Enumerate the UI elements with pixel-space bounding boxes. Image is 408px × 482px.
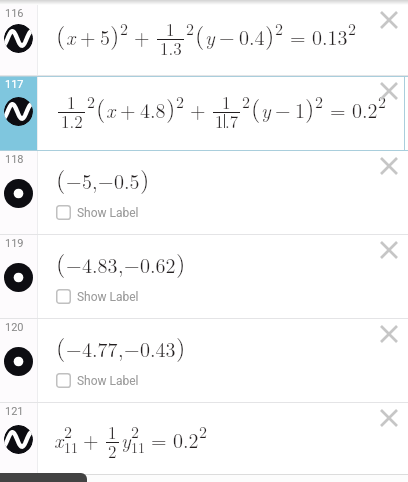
staticText: 1 <box>166 17 175 41</box>
staticText: 2 <box>186 17 195 40</box>
staticText: 2 <box>199 420 208 443</box>
staticText: 0.43 <box>140 334 176 362</box>
staticText: 0.4 <box>239 22 265 50</box>
staticText: Show Label <box>71 206 139 220</box>
staticText: 1.3 <box>160 36 182 60</box>
button[interactable]: Delete expression <box>373 318 405 350</box>
staticText: , <box>118 334 124 362</box>
staticText: 5 <box>82 166 92 194</box>
button[interactable]: 116 <box>0 5 408 76</box>
staticText: 0.2 <box>173 425 199 453</box>
staticText: 2 <box>176 90 185 113</box>
staticText: y <box>121 425 131 453</box>
staticText: x <box>66 22 76 50</box>
staticText: 1 <box>222 90 231 114</box>
staticText: 2 <box>64 420 73 443</box>
staticText: ) <box>305 90 315 124</box>
staticText: ( <box>56 245 66 279</box>
staticText: 2 <box>242 90 251 113</box>
staticText: x <box>54 425 64 453</box>
staticText: 1 <box>295 95 305 123</box>
staticText: 11 <box>131 437 145 457</box>
staticText: 2 <box>348 17 357 40</box>
staticText: 118 <box>5 153 24 166</box>
button[interactable]: 121 <box>0 403 408 481</box>
button[interactable]: Delete expression <box>373 402 405 434</box>
staticText: 4.77 <box>82 334 118 362</box>
staticText: 0.13 <box>312 22 348 50</box>
staticText: 11 <box>64 437 78 457</box>
staticText: 2 <box>108 439 117 463</box>
staticText: − <box>98 166 114 194</box>
staticText: + <box>80 22 96 50</box>
staticText: 2 <box>120 17 129 40</box>
staticText: 5 <box>100 22 110 50</box>
staticText: , <box>92 166 98 194</box>
staticText: − <box>124 250 140 278</box>
staticText: + <box>134 22 150 50</box>
button[interactable]: Show Label <box>56 205 139 220</box>
staticText: 1.2 <box>61 109 83 133</box>
button[interactable]: Show Label <box>56 373 139 388</box>
staticText: − <box>219 22 235 50</box>
staticText: ) <box>265 17 275 51</box>
staticText: ( <box>96 90 106 124</box>
button[interactable]: 118 <box>0 151 408 235</box>
staticText: + <box>83 425 99 453</box>
staticText: + <box>190 95 206 123</box>
staticText: − <box>275 95 291 123</box>
staticText: 1 <box>215 109 224 133</box>
staticText: = <box>290 22 306 50</box>
staticText: 119 <box>5 237 24 250</box>
staticText: 116 <box>5 7 24 20</box>
staticText: ( <box>56 17 66 51</box>
staticText: ) <box>110 17 120 51</box>
button[interactable]: Delete expression <box>373 150 405 182</box>
staticText: x <box>106 95 116 123</box>
staticText: ) <box>166 90 176 124</box>
staticText: 120 <box>5 321 24 334</box>
button[interactable]: Delete expression <box>373 234 405 266</box>
staticText: ) <box>176 245 186 279</box>
button[interactable]: Delete expression <box>373 4 405 36</box>
staticText: .7 <box>225 109 239 133</box>
staticText: ) <box>140 161 150 195</box>
staticText: 0.2 <box>352 95 378 123</box>
button[interactable]: Delete expression <box>373 75 405 107</box>
staticText: + <box>120 95 136 123</box>
staticText: ) <box>176 329 186 363</box>
staticText: 2 <box>87 90 96 113</box>
staticText: Show Label <box>71 290 139 304</box>
staticText: y <box>261 95 271 123</box>
staticText: = <box>330 95 346 123</box>
staticText: 1 <box>67 90 76 114</box>
staticText: 2 <box>131 420 140 443</box>
staticText: − <box>66 166 82 194</box>
staticText: ( <box>56 161 66 195</box>
staticText: − <box>66 334 82 362</box>
staticText: ( <box>195 17 205 51</box>
staticText: Show Label <box>71 374 139 388</box>
staticText: 0.62 <box>140 250 176 278</box>
staticText: y <box>205 22 215 50</box>
staticText: 2 <box>315 90 324 113</box>
staticText: 2 <box>378 90 387 113</box>
staticText: , <box>118 250 124 278</box>
staticText: − <box>124 334 140 362</box>
staticText: 0.5 <box>114 166 140 194</box>
staticText: 117 <box>5 78 24 91</box>
button[interactable]: 120 <box>0 319 408 403</box>
staticText: 121 <box>5 405 24 418</box>
staticText: 2 <box>275 17 284 40</box>
button[interactable]: 117 <box>0 76 408 151</box>
button[interactable]: Show Label <box>56 289 139 304</box>
button[interactable]: Keyboard <box>0 473 87 482</box>
staticText: 4.83 <box>82 250 118 278</box>
staticText: 4.8 <box>140 95 166 123</box>
staticText: = <box>151 425 167 453</box>
staticText: ( <box>56 329 66 363</box>
staticText: ( <box>251 90 261 124</box>
staticText: − <box>66 250 82 278</box>
button[interactable]: 119 <box>0 235 408 319</box>
staticText: 1 <box>108 420 117 444</box>
